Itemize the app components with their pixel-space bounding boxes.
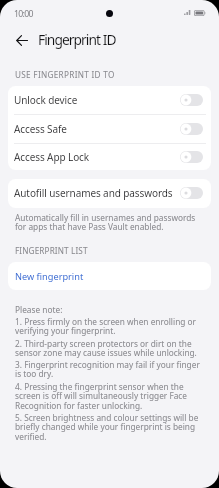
- staticText: USE FINGERPRINT ID TO: [15, 69, 115, 80]
- staticText: Unlock device: [14, 93, 180, 107]
- button[interactable]: Access App Lock: [8, 144, 211, 170]
- button[interactable]: Access Safe: [8, 115, 211, 143]
- staticText: New fingerprint: [15, 270, 84, 283]
- staticText: 4. Pressing the fingerprint sensor when …: [15, 381, 204, 412]
- staticText: 10:00: [14, 8, 33, 20]
- staticText: Automatically fill in usernames and pass…: [15, 212, 204, 233]
- staticText: 2. Third-party screen protectors or dirt…: [15, 338, 204, 359]
- staticText: Please note:: [15, 304, 63, 315]
- staticText: FINGERPRINT LIST: [15, 245, 88, 256]
- staticText: Access Safe: [14, 122, 180, 136]
- staticText: 3. Fingerprint recognition may fail if y…: [15, 359, 204, 380]
- staticText: Fingerprint ID: [38, 30, 116, 49]
- button[interactable]: Unlock device: [8, 86, 211, 114]
- button[interactable]: Back: [6, 25, 37, 55]
- staticText: 5. Screen brightness and colour settings…: [15, 412, 204, 443]
- staticText: Autofill usernames and passwords: [14, 186, 180, 200]
- button[interactable]: Autofill usernames and passwords: [8, 179, 211, 207]
- staticText: 1. Press firmly on the screen when enrol…: [15, 316, 204, 337]
- staticText: Access App Lock: [14, 150, 180, 164]
- button[interactable]: New fingerprint: [8, 262, 211, 290]
